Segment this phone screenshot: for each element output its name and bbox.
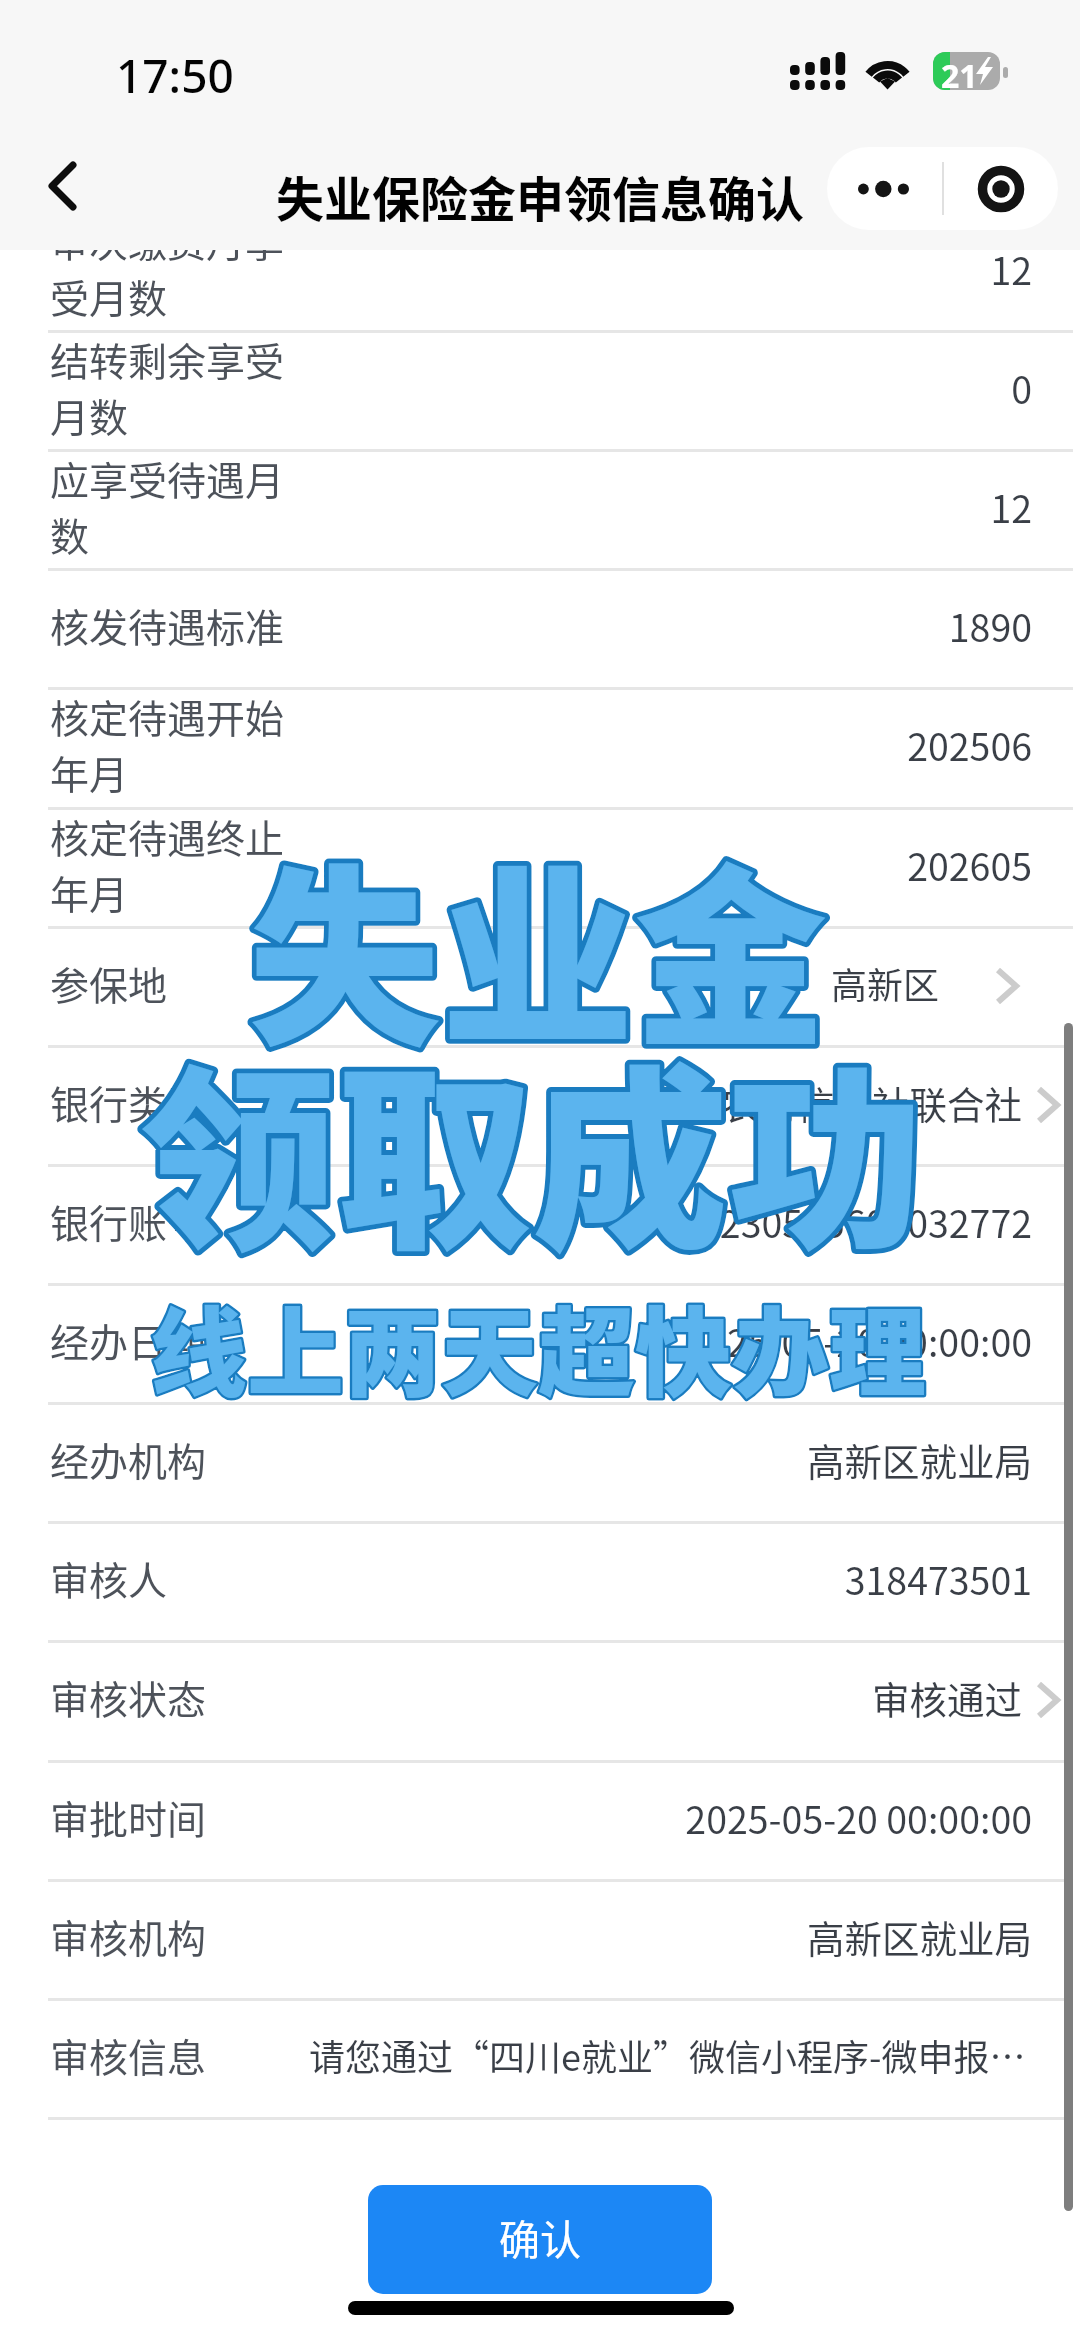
staticText: 高新区就业局 [200, 1909, 1032, 1963]
button[interactable]: 银行类型 [0, 1045, 1080, 1164]
staticText: 202605 [200, 837, 1032, 891]
staticText: 结转剩余享受 [50, 331, 285, 387]
button[interactable]: Back [22, 146, 102, 226]
staticText: 核定待遇开始 [50, 688, 285, 744]
staticText: 经办日期 [50, 1312, 207, 1368]
button[interactable]: 审核状态 [0, 1640, 1080, 1759]
button[interactable]: 审核信息 [0, 1998, 1080, 2117]
button[interactable]: 审核人 [0, 1521, 1080, 1640]
button[interactable]: 经办日期 [0, 1283, 1080, 1402]
staticText: 审次缴费月享 [50, 212, 285, 268]
button[interactable]: 确认 [368, 2185, 712, 2294]
staticText: 银行类型 [50, 1074, 207, 1130]
staticText: 6230515600032772 [200, 1194, 1032, 1248]
staticText: 核发待遇标准 [50, 597, 285, 653]
staticText: 四川省农村信用社联合社 [200, 1075, 1022, 1129]
staticText: 月数 [50, 387, 129, 443]
staticText: 12 [200, 479, 1032, 533]
button[interactable]: 审批时间 [0, 1760, 1080, 1879]
staticText: 参保地 [50, 955, 168, 1011]
staticText: 审核通过 [200, 1670, 1022, 1724]
staticText: 2025-05-20 00:00:00 [200, 1313, 1032, 1367]
staticText: 318473501 [200, 1551, 1032, 1605]
button[interactable]: 审核机构 [0, 1879, 1080, 1998]
button[interactable]: 核定待遇开始 [0, 687, 1080, 806]
staticText: 银行账号 [50, 1193, 207, 1249]
button[interactable]: 经办机构 [0, 1402, 1080, 1521]
staticText: 应享受待遇月 [50, 450, 285, 506]
staticText: 0 [200, 360, 1032, 414]
staticText: 请您通过“四川e就业”微信小程序-微申报… [309, 2029, 1026, 2081]
staticText: 1890 [200, 598, 1032, 652]
button[interactable]: 银行账号 [0, 1164, 1080, 1283]
staticText: 受月数 [50, 268, 168, 324]
staticText: 21 [941, 54, 978, 98]
staticText: 数 [50, 506, 90, 562]
staticText: 202506 [200, 717, 1032, 771]
staticText: 审核信息 [50, 2027, 207, 2083]
button[interactable]: Close mini program [944, 147, 1058, 230]
staticText: 经办机构 [50, 1431, 207, 1487]
button[interactable]: 审次缴费月享 [0, 211, 1080, 330]
button[interactable]: 参保地 [0, 926, 1080, 1045]
button[interactable]: 核发待遇标准 [0, 568, 1080, 687]
staticText: 确认 [499, 2207, 581, 2266]
staticText: 审批时间 [50, 1789, 207, 1845]
staticText: 年月 [50, 864, 129, 920]
button[interactable]: More options [827, 147, 942, 230]
staticText: 17:50 [116, 44, 234, 107]
staticText: 审核状态 [50, 1669, 207, 1725]
staticText: 核定待遇终止 [50, 808, 285, 864]
button[interactable]: 核定待遇终止 [0, 807, 1080, 926]
staticText: 审核人 [50, 1550, 168, 1606]
staticText: 审核机构 [50, 1908, 207, 1964]
staticText: 高新区 [200, 957, 939, 1009]
button[interactable]: 结转剩余享受 [0, 330, 1080, 449]
staticText: 高新区就业局 [200, 1432, 1032, 1486]
button[interactable]: 应享受待遇月 [0, 449, 1080, 568]
staticText: 12 [200, 241, 1032, 295]
staticText: 失业保险金申领信息确认 [276, 161, 805, 231]
staticText: 2025-05-20 00:00:00 [200, 1790, 1032, 1844]
staticText: 年月 [50, 744, 129, 800]
